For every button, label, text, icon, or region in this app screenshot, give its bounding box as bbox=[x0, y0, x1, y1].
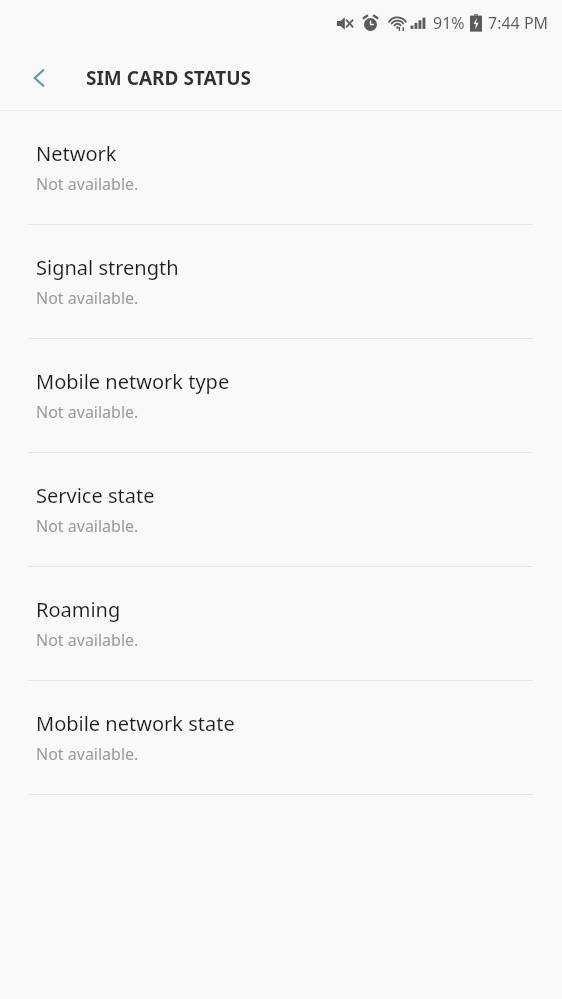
staticText: 91% bbox=[433, 12, 465, 34]
staticText: Not available. bbox=[36, 287, 139, 309]
button[interactable]: Service state bbox=[0, 453, 562, 567]
staticText: Roaming bbox=[36, 596, 121, 623]
button[interactable]: Mobile network state bbox=[0, 681, 562, 795]
staticText: Not available. bbox=[36, 401, 139, 423]
button[interactable]: Roaming bbox=[0, 567, 562, 681]
staticText: Network bbox=[36, 140, 117, 167]
staticText: Signal strength bbox=[36, 254, 179, 281]
staticText: Not available. bbox=[36, 173, 139, 195]
staticText: SIM CARD STATUS bbox=[86, 65, 252, 91]
staticText: Service state bbox=[36, 482, 155, 509]
staticText: Not available. bbox=[36, 629, 139, 651]
button[interactable]: Signal strength bbox=[0, 225, 562, 339]
button[interactable]: Back bbox=[16, 54, 64, 102]
button[interactable]: Network bbox=[0, 111, 562, 225]
staticText: Not available. bbox=[36, 743, 139, 765]
staticText: 7:44 PM bbox=[488, 12, 549, 34]
staticText: Mobile network type bbox=[36, 368, 230, 395]
button[interactable]: Mobile network type bbox=[0, 339, 562, 453]
staticText: Not available. bbox=[36, 515, 139, 537]
staticText: Mobile network state bbox=[36, 710, 235, 737]
